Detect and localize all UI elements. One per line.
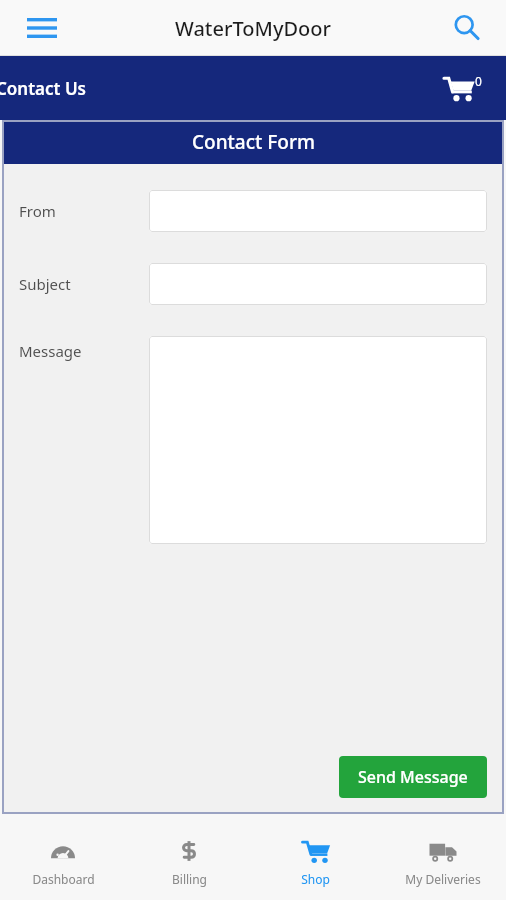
button[interactable]: Shopping cart, 0 items	[439, 71, 486, 106]
staticText: Billing	[172, 871, 207, 887]
button[interactable]: Dashboard	[0, 824, 126, 900]
button[interactable]: Subject input	[149, 263, 487, 305]
staticText: From	[19, 201, 149, 221]
staticText: Message	[19, 341, 149, 361]
button[interactable]: My Deliveries	[379, 824, 506, 900]
staticText: WaterToMyDoor	[175, 15, 331, 42]
staticText: Contact Us	[0, 77, 86, 100]
staticText: My Deliveries	[405, 871, 481, 887]
staticText: Contact Form	[192, 129, 315, 155]
staticText: Dashboard	[32, 871, 95, 887]
staticText: Send Message	[358, 766, 468, 788]
staticText: 0	[475, 73, 482, 89]
button[interactable]: Message input	[149, 336, 487, 544]
staticText: Shop	[301, 871, 330, 887]
button[interactable]: Shop	[252, 824, 379, 900]
button[interactable]: Search	[442, 3, 492, 53]
button[interactable]: Open navigation menu	[16, 2, 68, 54]
button[interactable]: Send Message	[339, 756, 487, 798]
button[interactable]: From input	[149, 190, 487, 232]
staticText: Subject	[19, 274, 149, 294]
button[interactable]: Billing	[126, 824, 252, 900]
